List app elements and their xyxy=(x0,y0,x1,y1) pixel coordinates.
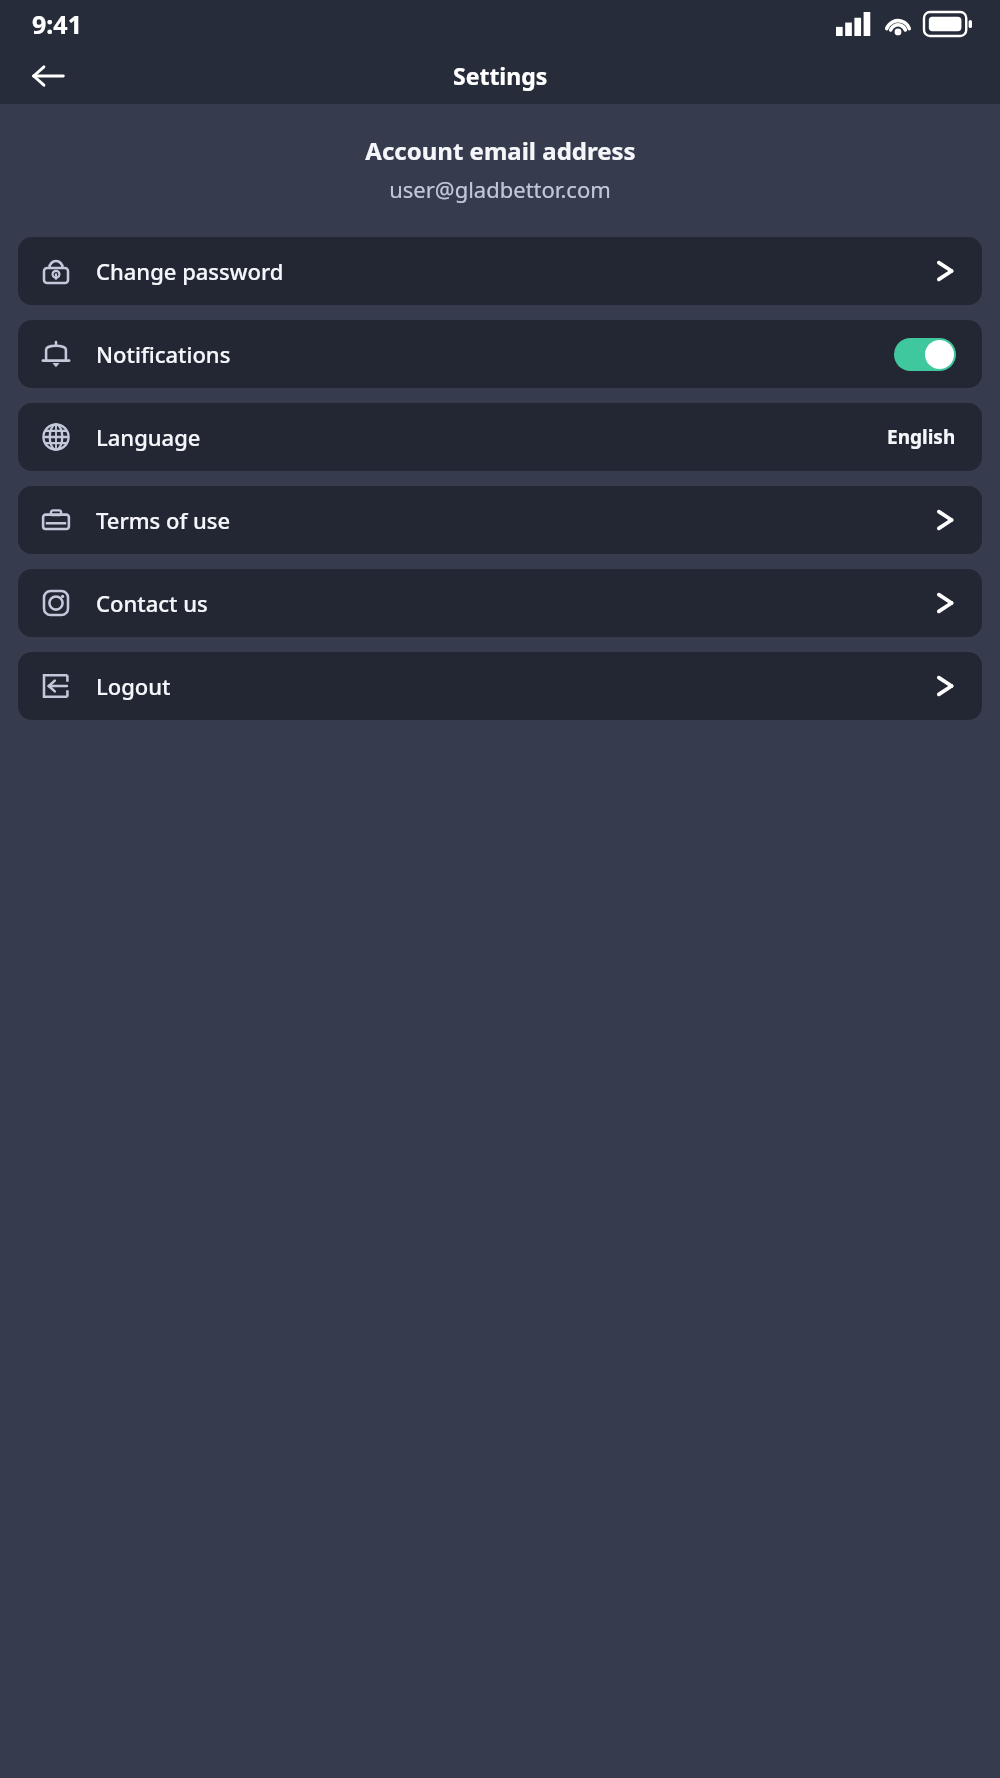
staticText: Logout xyxy=(96,671,171,701)
staticText: Language xyxy=(96,422,201,452)
staticText: Settings xyxy=(453,60,548,91)
staticText: Contact us xyxy=(96,588,208,618)
button[interactable]: Contact us xyxy=(18,569,982,637)
button[interactable]: Logout xyxy=(18,652,982,720)
staticText: Terms of use xyxy=(96,505,231,535)
other: Open xyxy=(934,671,956,701)
button[interactable]: Notifications toggle xyxy=(894,338,956,371)
button[interactable]: Notifications xyxy=(18,320,982,388)
button[interactable]: Change password xyxy=(18,237,982,305)
staticText: English xyxy=(887,424,956,450)
staticText: Notifications xyxy=(96,339,231,369)
staticText: 9:41 xyxy=(32,7,82,41)
other: Open xyxy=(934,505,956,535)
button[interactable]: Back xyxy=(26,54,70,98)
staticText: Account email address xyxy=(365,134,636,167)
staticText: Change password xyxy=(96,256,284,286)
staticText: user@gladbettor.com xyxy=(389,174,611,204)
button[interactable]: Language xyxy=(18,403,982,471)
other: Open xyxy=(934,588,956,618)
other: Open xyxy=(934,256,956,286)
button[interactable]: Terms of use xyxy=(18,486,982,554)
